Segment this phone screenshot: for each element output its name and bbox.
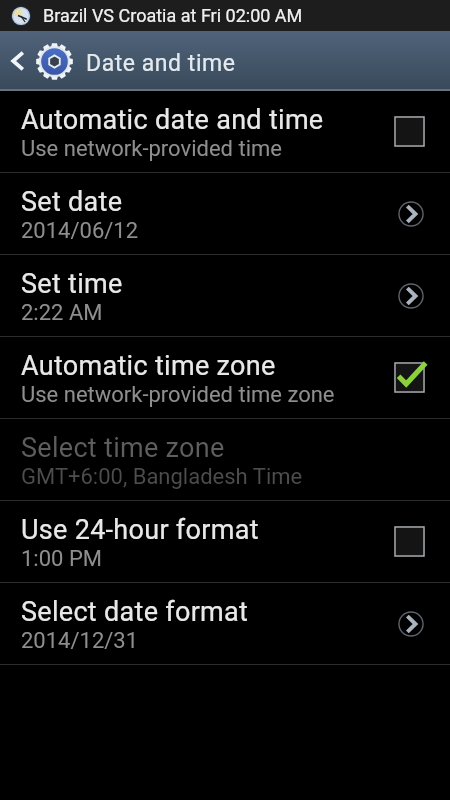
button[interactable]: Set date <box>0 173 450 254</box>
other: Date and time settings <box>36 43 73 80</box>
button[interactable]: Select date format <box>0 583 450 664</box>
button[interactable]: Use 24-hour format <box>0 501 450 582</box>
button[interactable]: Set time <box>0 255 450 336</box>
staticText: Select date format <box>21 596 249 628</box>
button[interactable]: Automatic date and time <box>0 91 450 172</box>
button[interactable]: Open Set date <box>385 188 437 240</box>
staticText: Use network-provided time zone <box>21 382 335 408</box>
button[interactable]: Automatic time zone <box>0 337 450 418</box>
staticText: Select time zone <box>21 432 225 464</box>
button[interactable]: Toggle Automatic date and time, unchecke… <box>383 106 435 158</box>
staticText: Automatic time zone <box>21 350 276 382</box>
staticText: Use network-provided time <box>21 136 282 162</box>
staticText: Set date <box>21 186 123 218</box>
staticText: Automatic date and time <box>21 104 324 136</box>
staticText: 1:00 PM <box>21 546 102 572</box>
button[interactable]: Toggle Automatic time zone, checked <box>383 352 435 404</box>
button[interactable]: Back <box>0 31 36 91</box>
staticText: Use 24-hour format <box>21 514 259 546</box>
button[interactable]: Select time zone <box>0 419 450 500</box>
staticText: Set time <box>21 268 123 300</box>
staticText: 2014/12/31 <box>21 628 139 654</box>
staticText: 2014/06/12 <box>21 218 139 244</box>
button[interactable]: Open Set time <box>385 270 437 322</box>
staticText: GMT+6:00, Bangladesh Time <box>21 464 303 490</box>
staticText: Brazil VS Croatia at Fri 02:00 AM <box>43 5 303 26</box>
button[interactable]: Open Select date format <box>385 598 437 650</box>
staticText: 2:22 AM <box>21 300 103 326</box>
button[interactable]: Toggle Use 24-hour format, unchecked <box>383 516 435 568</box>
staticText: Date and time <box>86 50 236 77</box>
